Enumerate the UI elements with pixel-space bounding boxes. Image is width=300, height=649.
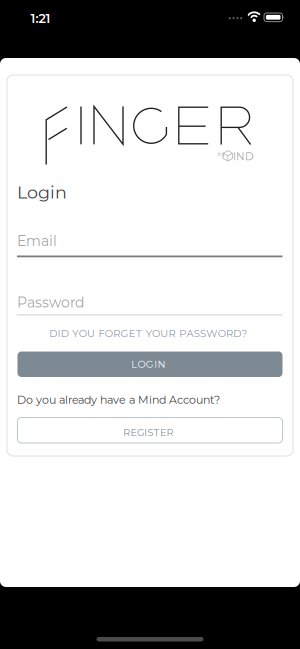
button[interactable]: REGISTER (17, 417, 282, 443)
button[interactable]: DID YOU FORGET YOUR PASSWORD? (0, 327, 300, 339)
button[interactable]: Password (17, 294, 282, 315)
button[interactable]: Email (17, 232, 282, 257)
staticText: 1:21 (30, 10, 50, 26)
staticText: by (217, 150, 224, 157)
staticText: Do you already have a Mind Account? (17, 393, 220, 406)
staticText: LOGIN (131, 358, 169, 370)
staticText: IND (233, 150, 254, 163)
staticText: REGISTER (123, 427, 177, 438)
staticText: Password (17, 294, 84, 311)
staticText: Email (17, 232, 57, 250)
staticText: DID YOU FORGET YOUR PASSWORD? (49, 327, 251, 339)
button[interactable]: LOGIN (17, 351, 282, 377)
staticText: Login (17, 181, 67, 203)
